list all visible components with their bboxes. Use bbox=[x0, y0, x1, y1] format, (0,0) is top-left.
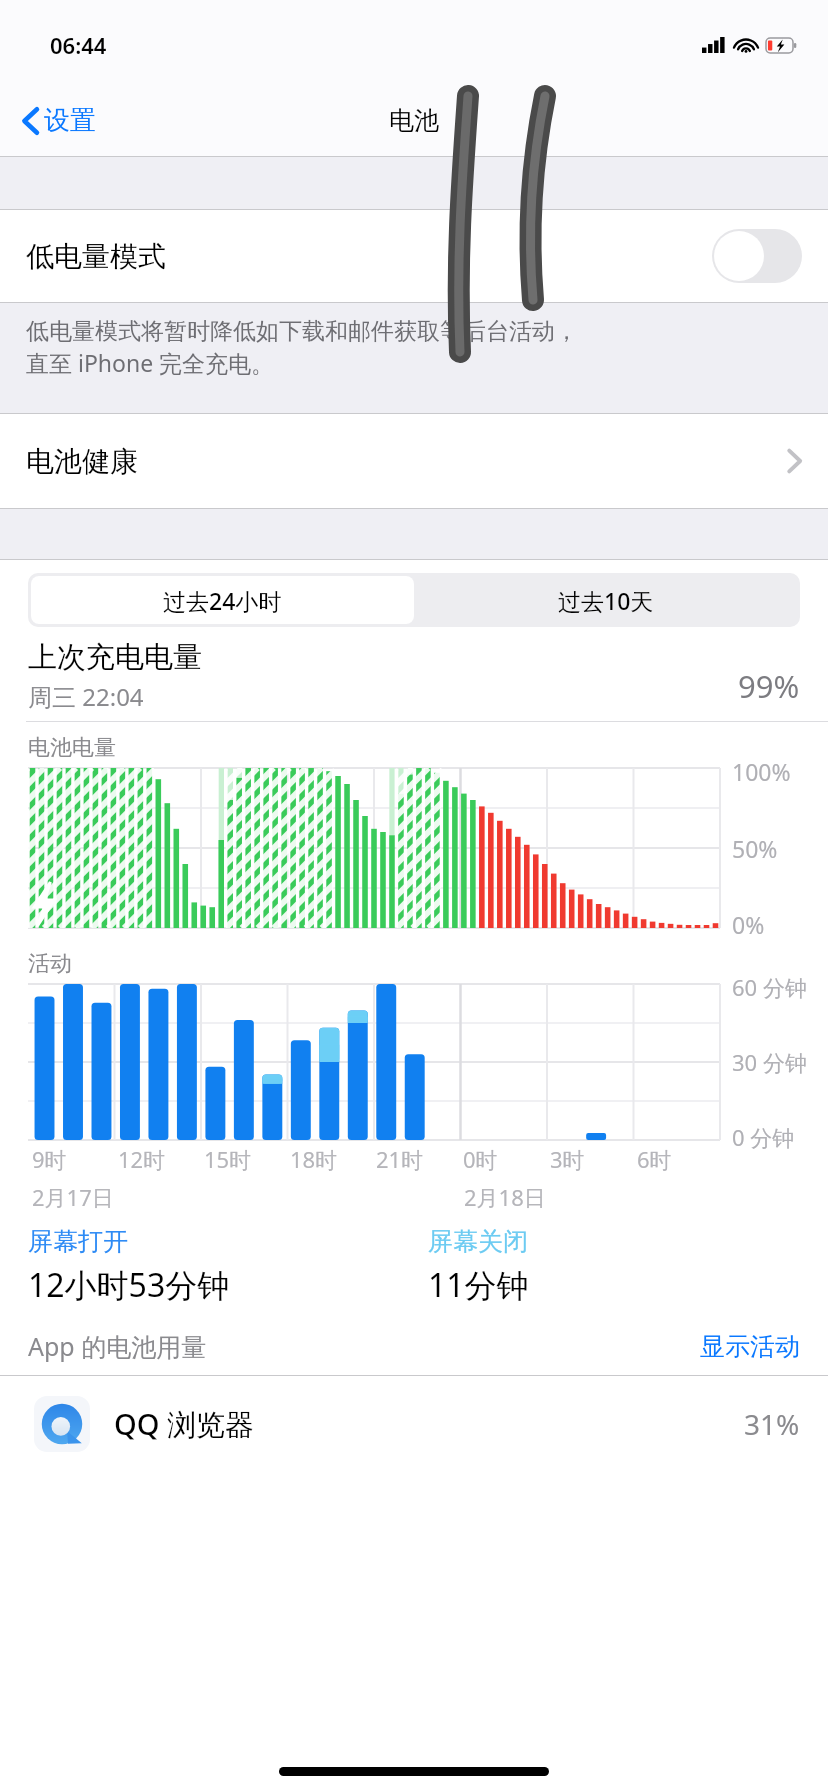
staticText: 11分钟 bbox=[428, 1263, 529, 1307]
staticText: 屏幕打开 bbox=[28, 1226, 128, 1257]
staticText: 6时 bbox=[637, 1144, 672, 1174]
button[interactable]: 过去10天 bbox=[414, 576, 797, 624]
staticText: 99% bbox=[738, 665, 800, 707]
staticText: 12时 bbox=[118, 1144, 166, 1174]
button[interactable]: 过去24小时 bbox=[31, 576, 414, 624]
staticText: QQ 浏览器 bbox=[114, 1404, 255, 1444]
staticText: 21时 bbox=[376, 1144, 424, 1174]
staticText: 活动 bbox=[28, 950, 72, 978]
button[interactable]: 显示活动 bbox=[700, 1331, 800, 1362]
staticText: 设置 bbox=[44, 104, 96, 137]
staticText: 9时 bbox=[32, 1144, 67, 1174]
button[interactable]: QQ 浏览器 bbox=[0, 1376, 828, 1472]
button[interactable]: 设置 bbox=[0, 98, 108, 143]
staticText: 100% bbox=[732, 756, 791, 787]
staticText: 06:44 bbox=[50, 30, 107, 60]
staticText: 过去10天 bbox=[558, 585, 654, 616]
staticText: 2月18日 bbox=[464, 1182, 546, 1212]
staticText: 显示活动 bbox=[700, 1331, 800, 1362]
staticText: 15时 bbox=[204, 1144, 252, 1174]
staticText: 周三 22:04 bbox=[28, 680, 144, 713]
staticText: 电池 bbox=[389, 105, 439, 136]
staticText: 12小时53分钟 bbox=[28, 1263, 230, 1307]
staticText: 电池健康 bbox=[26, 444, 138, 479]
button[interactable]: 电池健康 bbox=[0, 414, 828, 508]
staticText: 低电量模式将暂时降低如下载和邮件获取等后台活动， 直至 iPhone 完全充电。 bbox=[26, 317, 578, 379]
button[interactable]: 低电量模式 bbox=[0, 210, 828, 302]
staticText: 2月17日 bbox=[32, 1182, 114, 1212]
staticText: 低电量模式 bbox=[26, 239, 166, 274]
button[interactable]: 低电量模式开关 bbox=[712, 229, 802, 283]
staticText: 50% bbox=[732, 833, 778, 864]
staticText: 0 分钟 bbox=[732, 1122, 795, 1152]
staticText: 0时 bbox=[463, 1144, 498, 1174]
staticText: 屏幕关闭 bbox=[428, 1226, 528, 1257]
staticText: 18时 bbox=[290, 1144, 338, 1174]
staticText: 31% bbox=[744, 1405, 800, 1443]
staticText: App 的电池用量 bbox=[28, 1329, 207, 1363]
staticText: 60 分钟 bbox=[732, 972, 807, 1002]
staticText: 上次充电电量 bbox=[28, 639, 202, 676]
staticText: 过去24小时 bbox=[163, 585, 282, 616]
staticText: 30 分钟 bbox=[732, 1047, 807, 1077]
staticText: 电池电量 bbox=[28, 734, 116, 762]
staticText: 0% bbox=[732, 909, 765, 940]
staticText: 3时 bbox=[550, 1144, 585, 1174]
